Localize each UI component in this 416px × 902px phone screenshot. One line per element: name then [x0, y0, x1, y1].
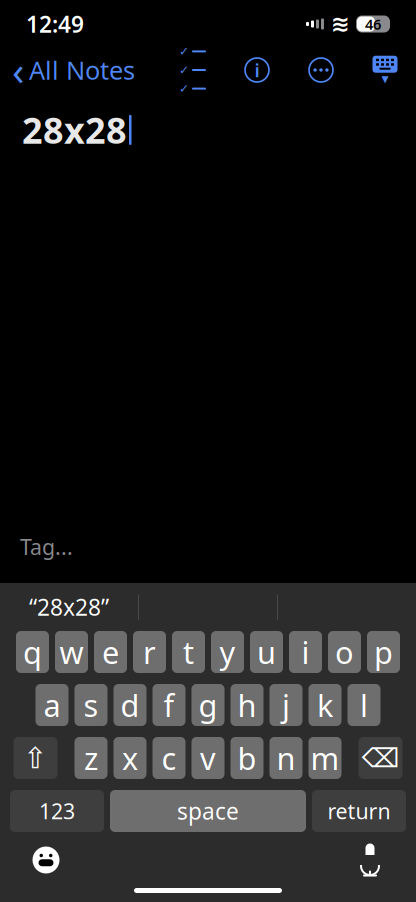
button[interactable]: p: [367, 631, 400, 673]
button[interactable]: q: [16, 631, 49, 673]
button[interactable]: d: [113, 684, 146, 726]
staticText: g: [198, 685, 217, 725]
button[interactable]: Dictation: [348, 838, 392, 882]
button[interactable]: h: [230, 684, 263, 726]
staticText: ⌫: [361, 743, 399, 773]
staticText: ✓: [179, 45, 189, 58]
button[interactable]: j: [269, 684, 302, 726]
staticText: v: [200, 738, 216, 778]
button[interactable]: return: [312, 790, 406, 832]
button[interactable]: Hide Keyboard: [364, 49, 406, 91]
staticText: All Notes: [29, 53, 135, 87]
staticText: ≋: [331, 11, 350, 37]
staticText: f: [163, 685, 174, 725]
button[interactable]: g: [191, 684, 224, 726]
staticText: w: [59, 632, 83, 672]
staticText: “28x28”: [29, 592, 109, 622]
staticText: u: [257, 632, 276, 672]
staticText: c: [161, 738, 176, 778]
button[interactable]: Delete: [358, 737, 402, 779]
staticText: i: [254, 58, 259, 82]
staticText: p: [374, 632, 393, 672]
staticText: m: [310, 738, 339, 778]
staticText: ✓: [179, 82, 189, 95]
staticText: n: [276, 738, 295, 778]
staticText: d: [120, 685, 139, 725]
staticText: ▼: [381, 74, 388, 84]
button[interactable]: ‹: [0, 39, 135, 100]
button[interactable]: l: [347, 684, 380, 726]
staticText: ‹: [12, 43, 24, 96]
staticText: o: [335, 632, 354, 672]
button[interactable]: s: [74, 684, 107, 726]
button[interactable]: a: [35, 684, 68, 726]
staticText: t: [183, 632, 194, 672]
button[interactable]: b: [230, 737, 263, 779]
button[interactable]: 123: [10, 790, 104, 832]
button[interactable]: Shift: [13, 737, 57, 779]
button[interactable]: x: [113, 737, 146, 779]
staticText: s: [83, 685, 98, 725]
button[interactable]: o: [328, 631, 361, 673]
button[interactable]: Info: [236, 49, 278, 91]
button[interactable]: More: [300, 49, 342, 91]
staticText: a: [43, 685, 60, 725]
staticText: r: [143, 632, 156, 672]
button[interactable]: space: [110, 790, 306, 832]
staticText: ✓: [179, 63, 189, 77]
staticText: return: [327, 797, 390, 825]
button[interactable]: y: [211, 631, 244, 673]
button[interactable]: k: [308, 684, 341, 726]
button[interactable]: w: [55, 631, 88, 673]
button[interactable]: m: [308, 737, 341, 779]
staticText: z: [84, 738, 98, 778]
button[interactable]: v: [191, 737, 224, 779]
staticText: 12:49: [26, 9, 84, 39]
staticText: l: [360, 685, 368, 725]
button[interactable]: Emoji: [24, 838, 68, 882]
staticText: 123: [39, 797, 75, 825]
staticText: 46: [365, 14, 381, 34]
staticText: y: [219, 632, 235, 672]
staticText: j: [282, 685, 290, 725]
button[interactable]: f: [152, 684, 185, 726]
staticText: ⇧: [23, 741, 48, 775]
button[interactable]: i: [289, 631, 322, 673]
button[interactable]: z: [74, 737, 107, 779]
button[interactable]: u: [250, 631, 283, 673]
staticText: x: [122, 738, 138, 778]
button[interactable]: r: [133, 631, 166, 673]
staticText: Tag...: [20, 533, 73, 561]
staticText: e: [102, 632, 119, 672]
staticText: q: [23, 632, 42, 672]
button[interactable]: n: [269, 737, 302, 779]
staticText: k: [317, 685, 333, 725]
staticText: i: [301, 632, 309, 672]
staticText: h: [237, 685, 256, 725]
button[interactable]: e: [94, 631, 127, 673]
staticText: 28x28: [22, 106, 127, 154]
button[interactable]: t: [172, 631, 205, 673]
staticText: space: [177, 796, 239, 826]
button[interactable]: Checklist: [172, 50, 214, 90]
button[interactable]: c: [152, 737, 185, 779]
staticText: b: [237, 738, 256, 778]
